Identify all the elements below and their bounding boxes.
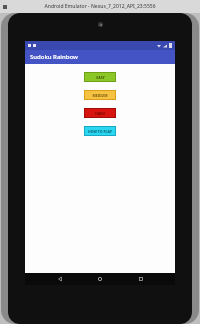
button[interactable]: Recent apps: [135, 273, 147, 285]
staticText: HARD: [95, 111, 105, 116]
staticText: MEDIUM: [92, 93, 108, 98]
button[interactable]: HOW TO PLAY: [84, 126, 116, 136]
button[interactable]: Back: [54, 273, 66, 285]
button[interactable]: HARD: [84, 108, 116, 118]
staticText: Android Emulator - Nexus_7_2012_API_23:5…: [44, 3, 156, 10]
staticText: EASY: [96, 75, 105, 80]
button[interactable]: MEDIUM: [84, 90, 116, 100]
staticText: HOW TO PLAY: [88, 129, 112, 134]
button[interactable]: EASY: [84, 72, 116, 82]
staticText: Sudoku Rainbow: [30, 53, 78, 61]
button[interactable]: Home: [94, 273, 106, 285]
